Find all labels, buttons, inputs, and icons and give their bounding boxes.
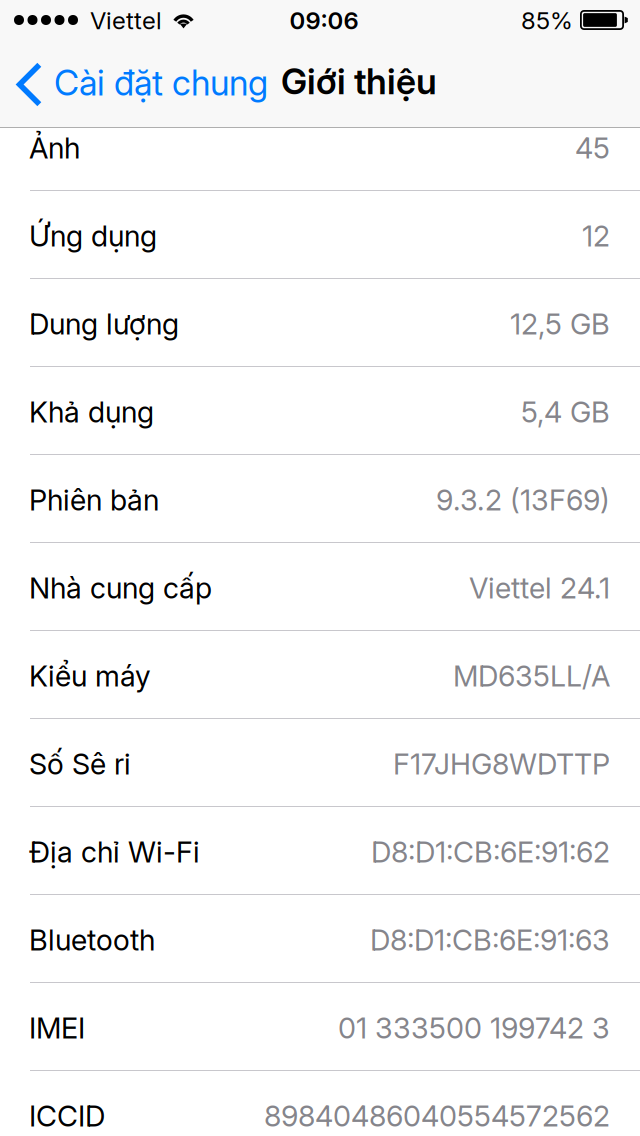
staticText: Kiểu máy xyxy=(29,659,151,693)
staticText: 12 xyxy=(582,219,610,253)
button[interactable]: Địa chỉ Wi-Fi xyxy=(0,807,640,895)
staticText: Viettel 24.1 xyxy=(469,571,610,605)
button[interactable]: Phiên bản xyxy=(0,455,640,543)
staticText: 9.3.2 (13F69) xyxy=(436,483,610,517)
staticText: IMEI xyxy=(29,1011,85,1045)
button[interactable]: IMEI xyxy=(0,983,640,1071)
button[interactable]: Dung lượng xyxy=(0,279,640,367)
staticText: Số Sê ri xyxy=(29,747,131,781)
staticText: 5,4 GB xyxy=(521,395,610,429)
staticText: Địa chỉ Wi-Fi xyxy=(29,835,200,869)
staticText: D8:D1:CB:6E:91:62 xyxy=(371,835,610,869)
staticText: Phiên bản xyxy=(29,483,159,517)
staticText: 01 333500 199742 3 xyxy=(338,1011,610,1045)
button[interactable]: Kiểu máy xyxy=(0,631,640,719)
button[interactable]: ICCID xyxy=(0,1071,640,1136)
staticText: Giới thiệu xyxy=(281,60,437,103)
staticText: Bluetooth xyxy=(29,923,155,957)
staticText: F17JHG8WDTTP xyxy=(393,747,610,781)
staticText: Ứng dụng xyxy=(29,219,157,253)
staticText: 45 xyxy=(575,131,610,165)
button[interactable]: Ứng dụng xyxy=(0,191,640,279)
button[interactable]: Bluetooth xyxy=(0,895,640,983)
staticText: MD635LL/A xyxy=(453,659,610,693)
staticText: Cài đặt chung xyxy=(54,62,268,104)
staticText: 85% xyxy=(521,6,573,35)
button[interactable]: Quay lại Cài đặt chung xyxy=(0,40,252,127)
staticText: Khả dụng xyxy=(29,395,154,429)
staticText: 12,5 GB xyxy=(510,307,610,341)
button[interactable]: Số Sê ri xyxy=(0,719,640,807)
staticText: Dung lượng xyxy=(29,307,179,341)
staticText: Viettel xyxy=(90,6,162,35)
button[interactable]: Khả dụng xyxy=(0,367,640,455)
staticText: 89840486040554572562 xyxy=(264,1099,610,1133)
staticText: D8:D1:CB:6E:91:63 xyxy=(370,923,610,957)
button[interactable]: Ảnh xyxy=(0,103,640,191)
staticText: Nhà cung cấp xyxy=(29,571,212,605)
staticText: ICCID xyxy=(29,1099,105,1133)
staticText: Ảnh xyxy=(29,131,80,165)
button[interactable]: Nhà cung cấp xyxy=(0,543,640,631)
staticText: 09:06 xyxy=(289,6,358,35)
